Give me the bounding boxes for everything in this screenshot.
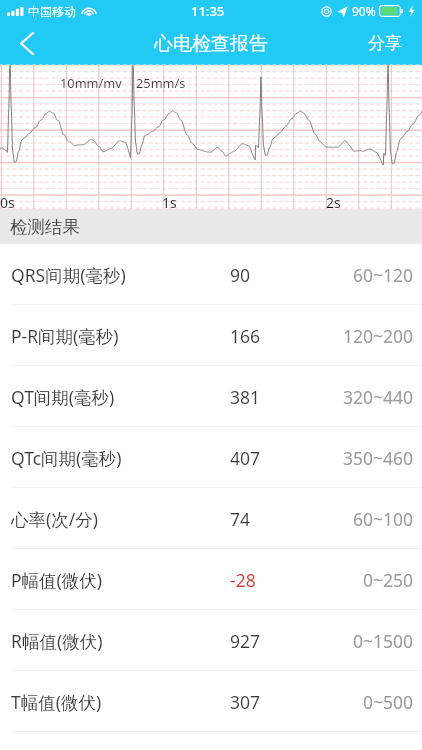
staticText: 60~100 xyxy=(353,507,414,531)
staticText: QRS间期(毫秒) xyxy=(11,263,126,287)
button[interactable]: 分享 xyxy=(352,22,422,65)
button[interactable]: P-R间期(毫秒) xyxy=(0,305,422,366)
staticText: 350~460 xyxy=(343,446,414,470)
staticText: P幅值(微伏) xyxy=(11,568,103,592)
staticText: 检测结果 xyxy=(10,216,80,238)
staticText: 0~1500 xyxy=(353,629,414,653)
staticText: 0~500 xyxy=(363,690,414,714)
staticText: 74 xyxy=(230,507,251,531)
staticText: 心率(次/分) xyxy=(11,507,99,531)
staticText: 心电检查报告 xyxy=(154,32,268,56)
button[interactable]: QT间期(毫秒) xyxy=(0,366,422,427)
staticText: 927 xyxy=(230,629,261,653)
button[interactable]: R幅值(微伏) xyxy=(0,610,422,671)
staticText: 90% xyxy=(352,3,376,19)
button[interactable]: QTc间期(毫秒) xyxy=(0,427,422,488)
staticText: 2s xyxy=(326,193,341,212)
staticText: R幅值(微伏) xyxy=(11,629,103,653)
staticText: T幅值(微伏) xyxy=(11,690,102,714)
staticText: 120~200 xyxy=(343,324,414,348)
staticText: 307 xyxy=(230,690,261,714)
staticText: QT间期(毫秒) xyxy=(11,385,115,409)
button[interactable]: 心率(次/分) xyxy=(0,488,422,549)
staticText: 407 xyxy=(230,446,261,470)
staticText: 90 xyxy=(230,263,251,287)
staticText: 25mm/s xyxy=(136,74,186,91)
staticText: 1s xyxy=(162,193,177,212)
staticText: 分享 xyxy=(368,33,402,54)
button[interactable]: QRS间期(毫秒) xyxy=(0,244,422,305)
button[interactable]: T幅值(微伏) xyxy=(0,671,422,732)
button[interactable]: Back xyxy=(0,22,54,65)
staticText: P-R间期(毫秒) xyxy=(11,324,119,348)
staticText: 60~120 xyxy=(353,263,414,287)
staticText: 320~440 xyxy=(343,385,414,409)
staticText: -28 xyxy=(230,568,256,592)
button[interactable]: P幅值(微伏) xyxy=(0,549,422,610)
staticText: 166 xyxy=(230,324,261,348)
staticText: 10mm/mv xyxy=(60,74,122,91)
staticText: QTc间期(毫秒) xyxy=(11,446,122,470)
staticText: 11:35 xyxy=(191,2,225,20)
staticText: 中国移动 xyxy=(28,4,76,19)
staticText: 0s xyxy=(0,193,15,212)
staticText: 0~250 xyxy=(363,568,414,592)
staticText: 381 xyxy=(230,385,261,409)
